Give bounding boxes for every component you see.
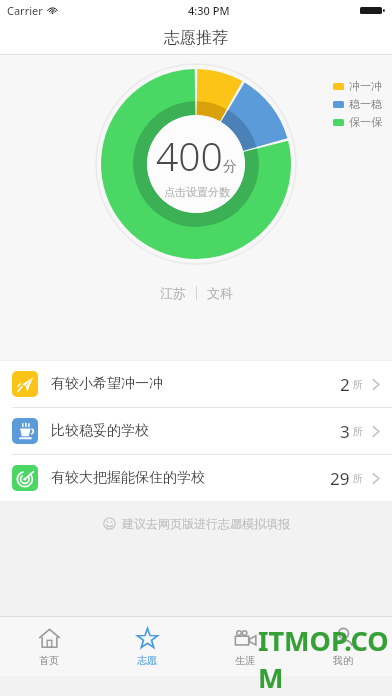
staticText: 稳一稳: [349, 97, 382, 111]
staticText: 首页: [39, 654, 59, 667]
staticText: 3: [340, 420, 350, 443]
button[interactable]: 首页: [0, 617, 98, 676]
staticText: 2: [340, 373, 350, 396]
staticText: 文科: [207, 285, 233, 301]
staticText: 400: [156, 129, 223, 182]
button[interactable]: 有较大把握能保住的学校: [0, 455, 392, 501]
button[interactable]: 生涯: [196, 617, 294, 676]
staticText: 冲一冲: [349, 79, 382, 93]
button[interactable]: 400: [95, 63, 297, 265]
staticText: 有较大把握能保住的学校: [51, 469, 205, 487]
staticText: 志愿推荐: [164, 28, 228, 48]
staticText: 建议去网页版进行志愿模拟填报: [122, 516, 290, 531]
staticText: 生涯: [235, 654, 255, 667]
button[interactable]: 我的: [294, 617, 392, 676]
staticText: 志愿: [137, 654, 157, 667]
staticText: 所: [353, 378, 363, 391]
staticText: 29: [330, 467, 350, 490]
button[interactable]: 有较小希望冲一冲: [0, 361, 392, 407]
staticText: 我的: [333, 654, 353, 667]
staticText: 江苏: [160, 285, 186, 301]
staticText: 所: [353, 472, 363, 485]
staticText: 比较稳妥的学校: [51, 422, 149, 440]
staticText: 保一保: [349, 115, 382, 129]
button[interactable]: 比较稳妥的学校: [0, 408, 392, 454]
staticText: 4:30 PM: [188, 3, 230, 18]
button[interactable]: 志愿: [98, 617, 196, 676]
staticText: Carrier: [7, 3, 43, 18]
staticText: ITMOP.COM: [258, 622, 392, 696]
staticText: 所: [353, 425, 363, 438]
staticText: 有较小希望冲一冲: [51, 375, 163, 393]
staticText: 分: [223, 158, 237, 176]
staticText: 点击设置分数: [164, 185, 230, 199]
